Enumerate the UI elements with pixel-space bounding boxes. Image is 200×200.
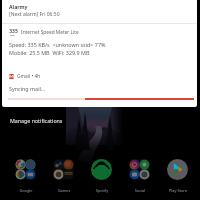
staticText: Play Store [160,188,196,193]
button[interactable]: Play Store [158,157,194,193]
staticText: 335 [9,28,18,35]
staticText: Speed: 335 KB/s <unknown ssid> 77% [9,41,106,48]
button[interactable]: 335 [2,24,197,68]
staticText: KB/s [9,35,18,36]
staticText: Social [122,188,158,193]
staticText: Games [46,188,82,193]
button[interactable]: Social [120,157,156,193]
staticText: Mobile: 25.5 MB WiFi: 329.9 MB [9,49,90,56]
button[interactable]: Google [6,157,42,193]
staticText: Gmail • 4h [17,73,41,80]
staticText: Spotify [84,188,120,193]
button[interactable]: Games [44,157,80,193]
staticText: Syncing mail… [9,85,46,92]
staticText: Google [8,188,44,193]
other: Play Store [167,159,188,180]
button[interactable]: Gmail • 4h [2,68,197,107]
staticText: [Next alarm] Fri 06:50 [9,11,60,18]
button[interactable]: Spotify [82,157,118,193]
button[interactable]: Alarmy [2,0,197,23]
staticText: Alarmy [9,3,28,10]
button[interactable]: Manage notifications [0,114,200,127]
staticText: Manage notifications [10,117,63,124]
staticText: Internet Speed Meter Lite [21,29,79,36]
other: Spotify [91,159,112,180]
